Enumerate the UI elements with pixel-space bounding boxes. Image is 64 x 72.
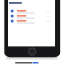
button[interactable]: [5, 18, 34, 23]
button[interactable]: [5, 13, 34, 18]
button[interactable]: [5, 8, 34, 13]
